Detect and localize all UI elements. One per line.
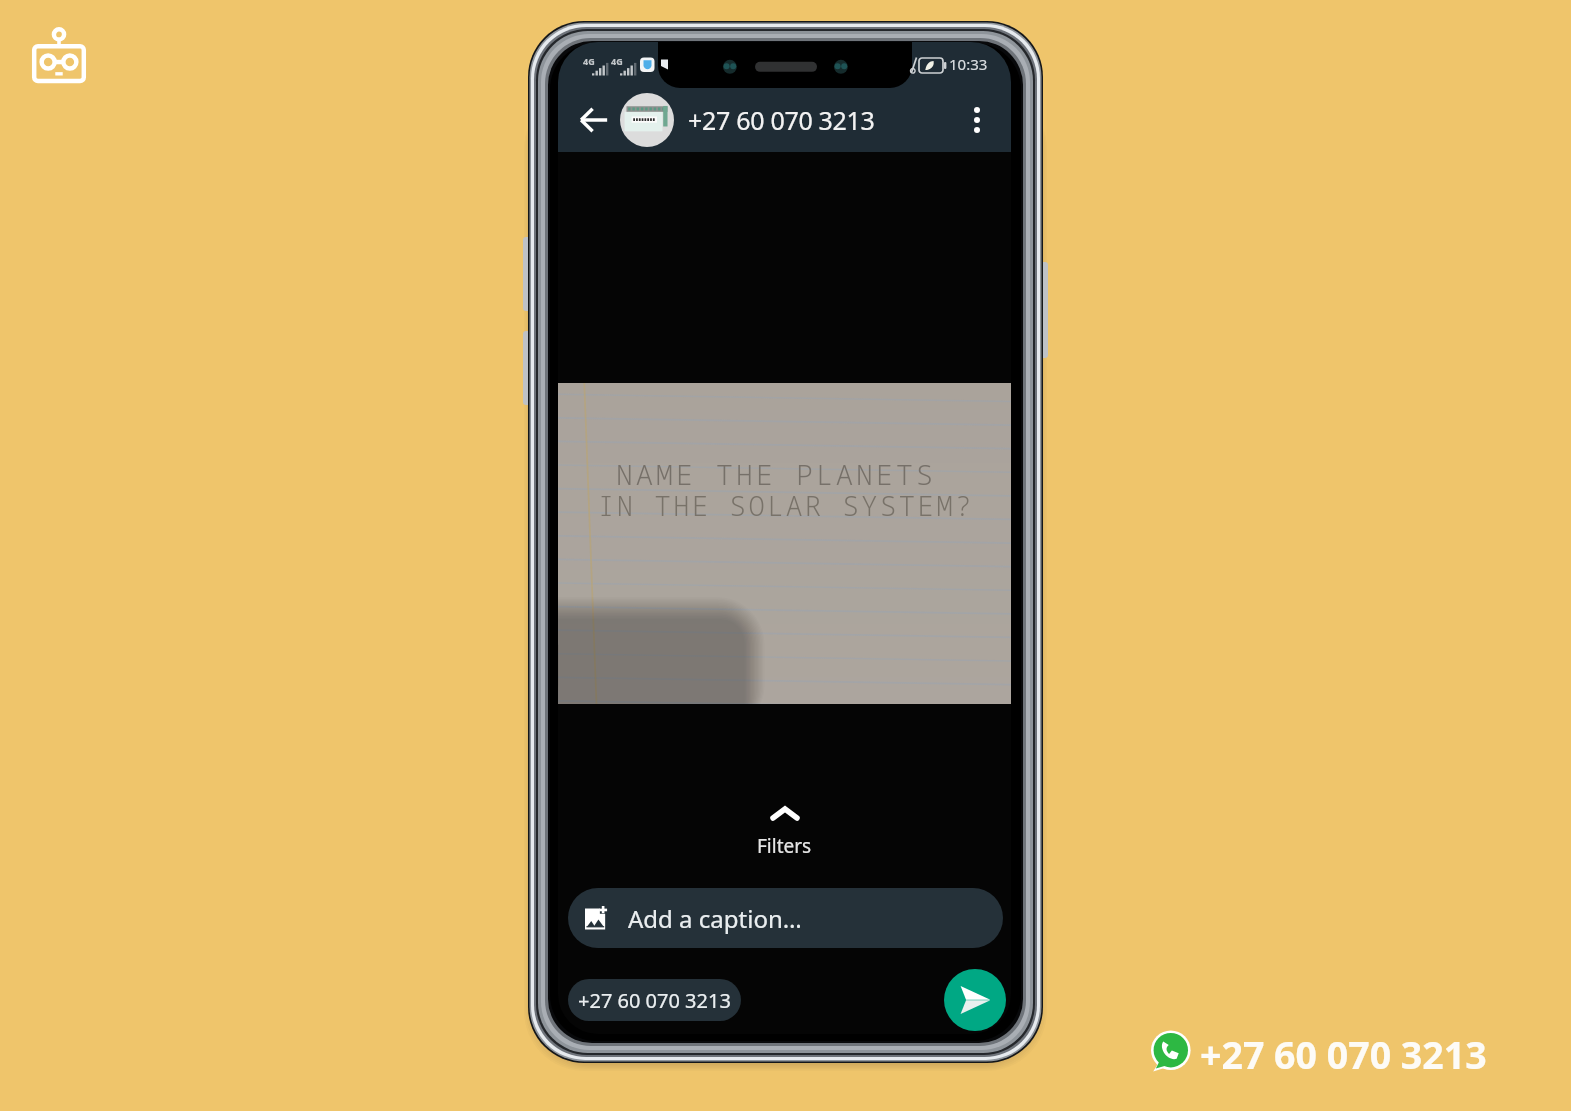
other: Bot logo <box>28 27 90 89</box>
button[interactable]: More options <box>957 100 997 140</box>
staticText: 4G <box>583 55 595 67</box>
staticText: Add a caption… <box>628 902 802 935</box>
button[interactable]: Add a caption… <box>568 888 1003 948</box>
staticText: IN THE SOLAR SYSTEM? <box>598 487 974 524</box>
button[interactable]: Send <box>944 969 1006 1031</box>
button[interactable]: WhatsApp +27 60 070 3213 <box>1152 1033 1492 1077</box>
button[interactable]: Back <box>572 98 616 142</box>
staticText: +27 60 070 3213 <box>688 103 875 137</box>
staticText: NAME THE PLANETS <box>616 455 937 493</box>
button[interactable]: +27 60 070 3213 <box>568 979 741 1021</box>
staticText: 10:33 <box>949 54 988 74</box>
staticText: Filters <box>757 833 812 859</box>
staticText: +27 60 070 3213 <box>578 987 731 1014</box>
staticText: 4G <box>611 55 623 67</box>
staticText: +27 60 070 3213 <box>1200 1029 1487 1073</box>
